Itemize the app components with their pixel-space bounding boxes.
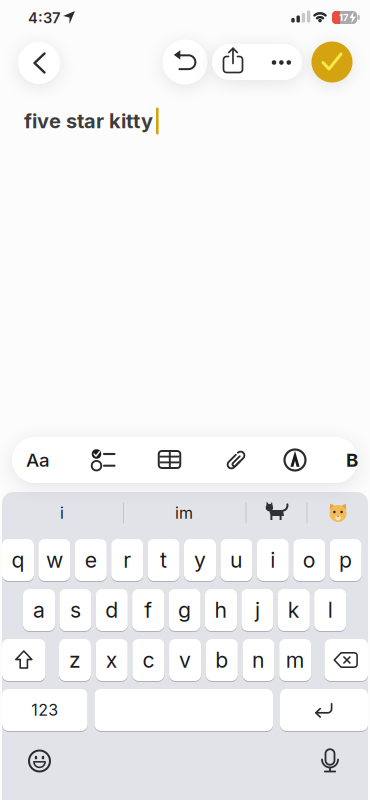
staticText: q [11,547,24,573]
staticText: k [288,597,300,623]
staticText: y [194,547,206,573]
staticText: w [46,547,63,573]
staticText: p [339,547,352,573]
staticText: 123 [31,701,58,719]
staticText: 4:37 [28,9,60,27]
staticText: g [178,597,191,623]
staticText: b [215,647,228,673]
staticText: d [105,597,118,623]
staticText: f [144,597,152,623]
staticText: l [328,597,333,623]
staticText: j [255,597,260,623]
staticText: r [123,547,131,573]
staticText: Aa [26,449,50,471]
staticText: s [70,597,81,623]
staticText: B [346,449,358,471]
staticText: v [179,647,191,673]
staticText: n [252,647,265,673]
staticText: 17 [339,12,348,23]
staticText: u [230,547,243,573]
staticText: im [175,504,193,522]
staticText: a [33,597,45,623]
staticText: i [270,547,275,573]
staticText: z [69,647,81,673]
staticText: x [106,647,118,673]
staticText: m [286,647,305,673]
staticText: c [142,647,154,673]
staticText: e [85,547,97,573]
staticText: i [60,504,64,522]
staticText: h [214,597,227,623]
staticText: o [303,547,316,573]
staticText: five star kitty [24,109,153,133]
staticText: t [160,547,167,573]
